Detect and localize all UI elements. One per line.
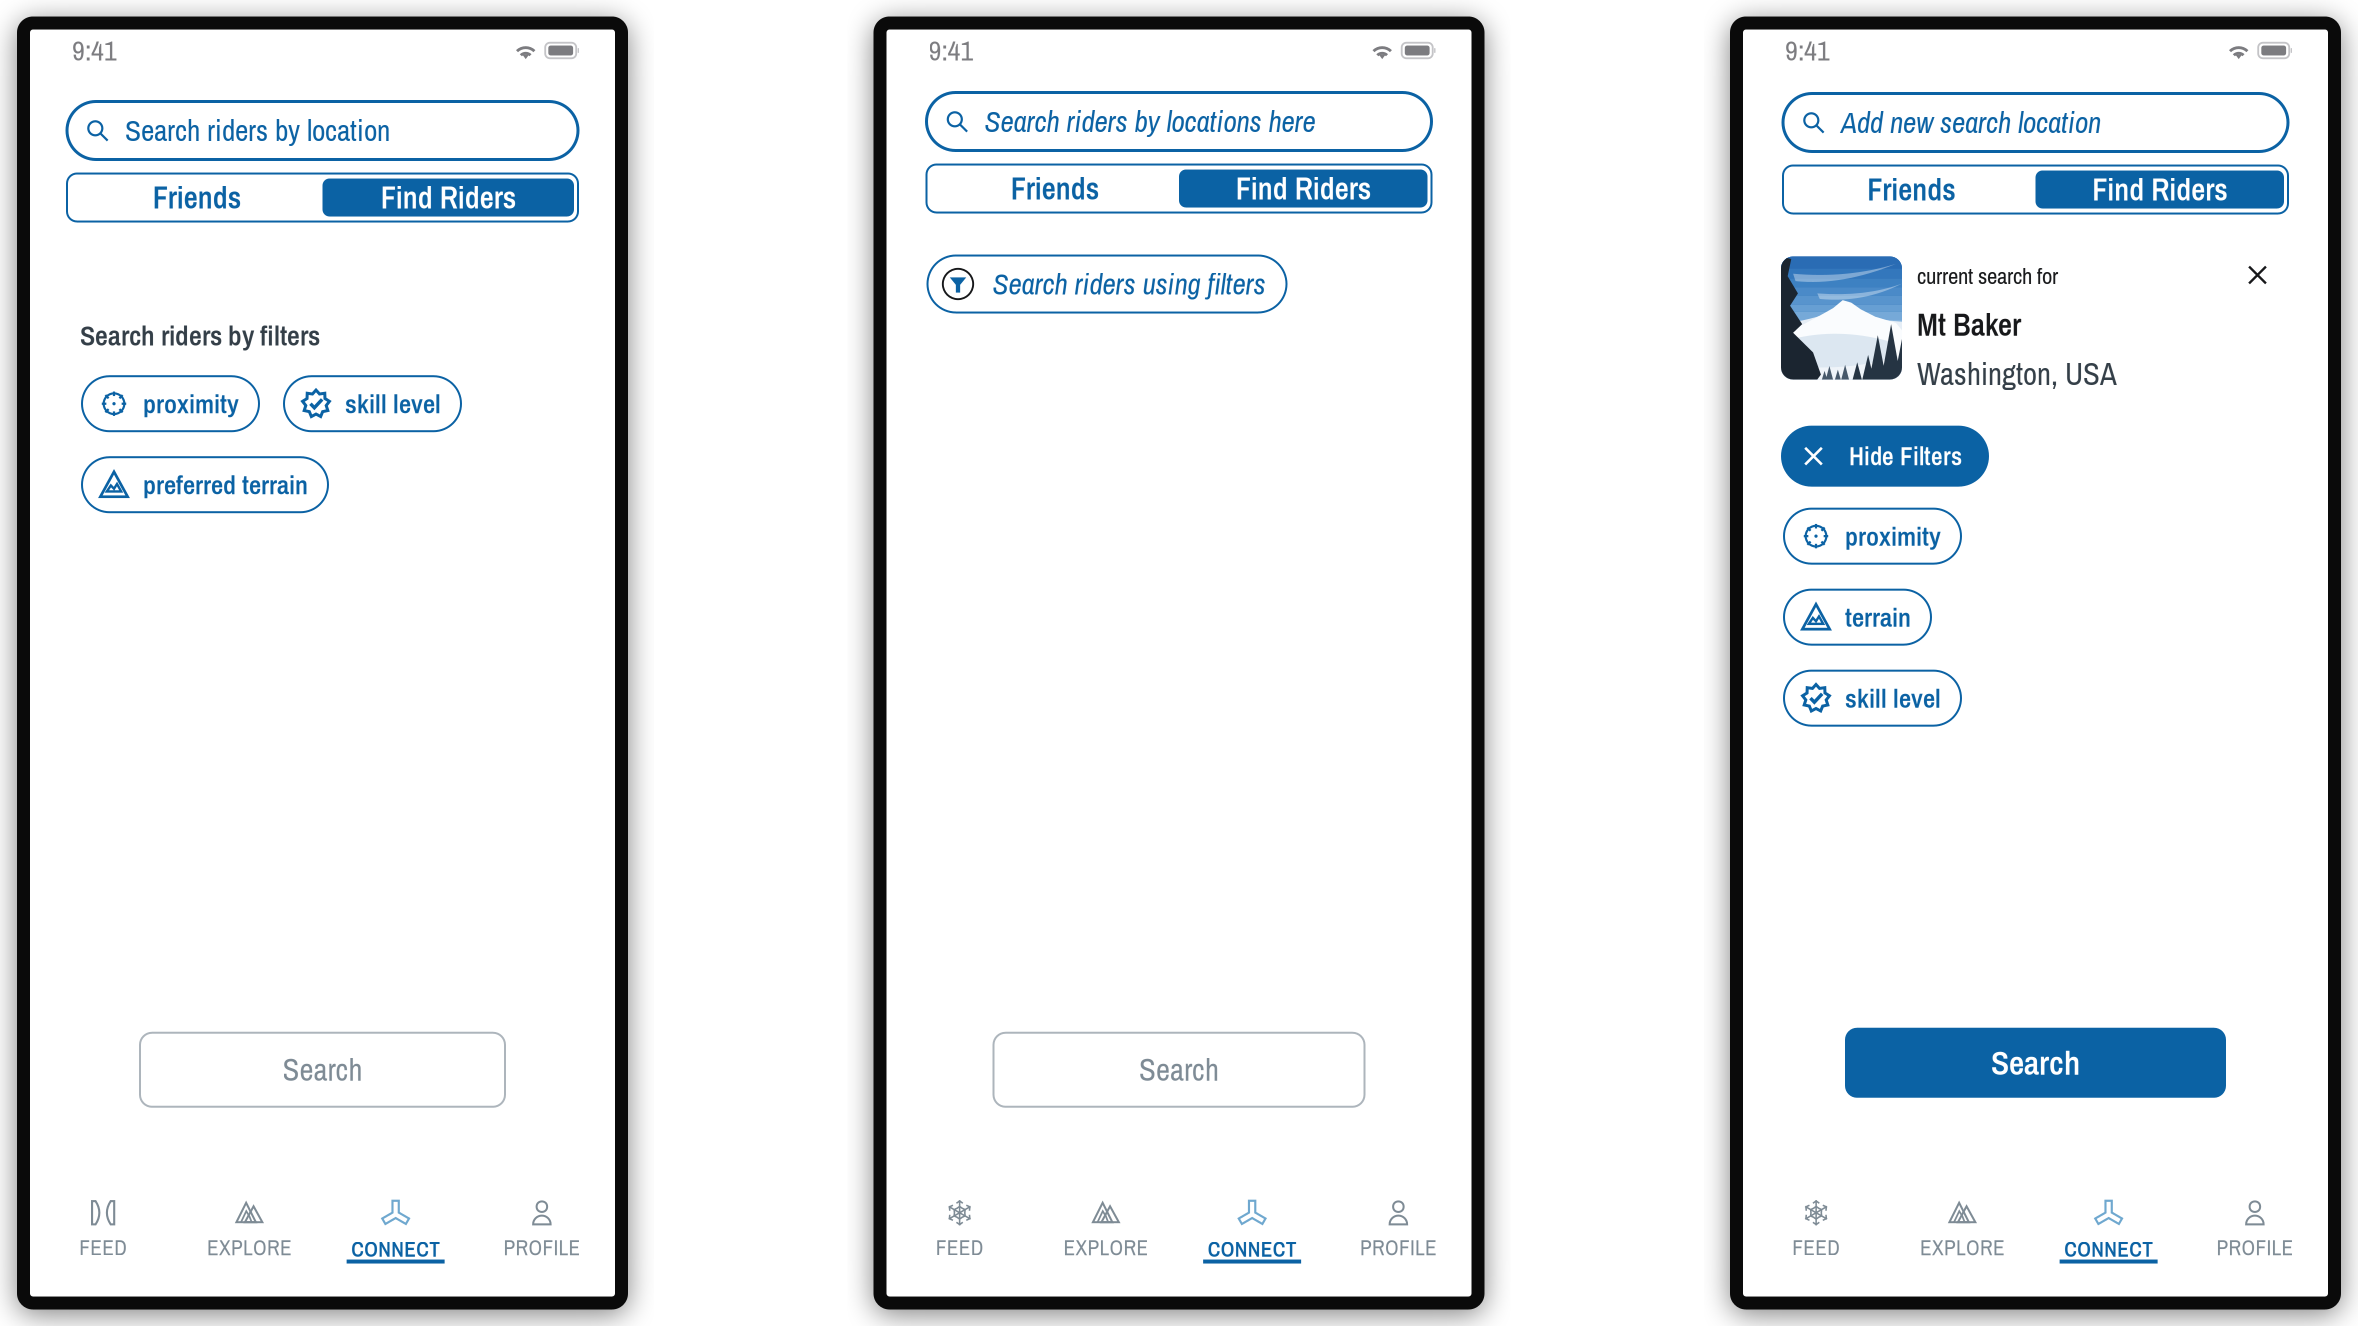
button[interactable]: Search riders by location xyxy=(67,101,578,159)
staticText: Hide Filters xyxy=(1849,439,1962,473)
button[interactable]: EXPLORE xyxy=(176,1199,322,1266)
button[interactable]: EXPLORE xyxy=(1889,1199,2035,1266)
staticText: proximity xyxy=(143,386,239,422)
button[interactable]: Search xyxy=(140,1033,505,1107)
staticText: Search riders by locations here xyxy=(984,102,1315,141)
staticText: PROFILE xyxy=(2216,1233,2293,1262)
button[interactable]: proximity xyxy=(1784,509,1961,564)
button[interactable]: preferred terrain xyxy=(82,457,328,512)
staticText: skill level xyxy=(345,386,441,422)
staticText: terrain xyxy=(1845,599,1911,635)
button[interactable]: PROFILE xyxy=(2182,1199,2328,1266)
button[interactable]: proximity xyxy=(82,376,259,431)
button[interactable]: Hide Filters xyxy=(1781,426,1989,487)
staticText: FEED xyxy=(1792,1233,1840,1262)
staticText: PROFILE xyxy=(503,1233,580,1262)
button[interactable]: EXPLORE xyxy=(1033,1199,1179,1266)
button[interactable]: Search riders by locations here xyxy=(926,92,1431,150)
staticText: Friends xyxy=(153,177,241,218)
button[interactable]: skill level xyxy=(1784,671,1961,726)
button[interactable]: CONNECT xyxy=(322,1198,469,1267)
staticText: PROFILE xyxy=(1360,1233,1437,1262)
button[interactable]: CONNECT xyxy=(1179,1198,1325,1267)
button[interactable]: Search riders using filters xyxy=(927,255,1286,312)
staticText: Find Riders xyxy=(2092,169,2227,210)
staticText: CONNECT xyxy=(2064,1235,2153,1263)
button[interactable]: Clear current search xyxy=(2248,256,2267,284)
staticText: Search riders using filters xyxy=(992,264,1265,304)
button[interactable]: CONNECT xyxy=(2035,1198,2182,1267)
staticText: 9:41 xyxy=(928,32,973,69)
button[interactable]: Friends xyxy=(930,169,1179,207)
button[interactable]: FEED xyxy=(886,1199,1033,1266)
staticText: CONNECT xyxy=(351,1235,440,1263)
staticText: FEED xyxy=(79,1233,127,1262)
staticText: Search xyxy=(282,1049,362,1090)
button[interactable]: Find Riders xyxy=(1179,169,1427,207)
staticText: Search xyxy=(1991,1040,2080,1085)
staticText: Mt Baker xyxy=(1917,304,2021,345)
staticText: EXPLORE xyxy=(1063,1233,1148,1262)
staticText: 9:41 xyxy=(1785,32,1830,69)
button[interactable]: FEED xyxy=(30,1199,176,1266)
staticText: Friends xyxy=(1011,168,1099,209)
button[interactable]: Find Riders xyxy=(322,178,574,216)
button[interactable]: skill level xyxy=(284,376,461,431)
button[interactable]: PROFILE xyxy=(469,1199,615,1266)
staticText: Washington, USA xyxy=(1917,353,2117,395)
staticText: CONNECT xyxy=(1208,1235,1297,1263)
staticText: current search for xyxy=(1917,260,2058,291)
button[interactable]: Add new search location xyxy=(1783,93,2288,151)
staticText: Search xyxy=(1139,1049,1219,1090)
staticText: Search riders by filters xyxy=(80,316,320,354)
staticText: 9:41 xyxy=(72,32,117,69)
staticText: Add new search location xyxy=(1841,103,2101,142)
button[interactable]: terrain xyxy=(1784,590,1931,645)
staticText: Friends xyxy=(1867,169,1955,210)
staticText: preferred terrain xyxy=(143,467,308,503)
staticText: skill level xyxy=(1845,680,1941,716)
button[interactable]: Search xyxy=(993,1033,1364,1107)
button[interactable]: Friends xyxy=(1787,170,2035,208)
button[interactable]: Find Riders xyxy=(2035,170,2284,208)
staticText: Find Riders xyxy=(1236,168,1371,209)
staticText: Find Riders xyxy=(381,177,516,218)
staticText: FEED xyxy=(936,1233,984,1262)
button[interactable]: FEED xyxy=(1743,1199,1889,1266)
button[interactable]: PROFILE xyxy=(1325,1199,1471,1266)
button[interactable]: Search xyxy=(1845,1028,2226,1098)
staticText: EXPLORE xyxy=(207,1233,292,1262)
staticText: EXPLORE xyxy=(1920,1233,2005,1262)
button[interactable]: Friends xyxy=(71,178,322,216)
staticText: Search riders by location xyxy=(125,111,390,150)
staticText: proximity xyxy=(1845,518,1941,554)
